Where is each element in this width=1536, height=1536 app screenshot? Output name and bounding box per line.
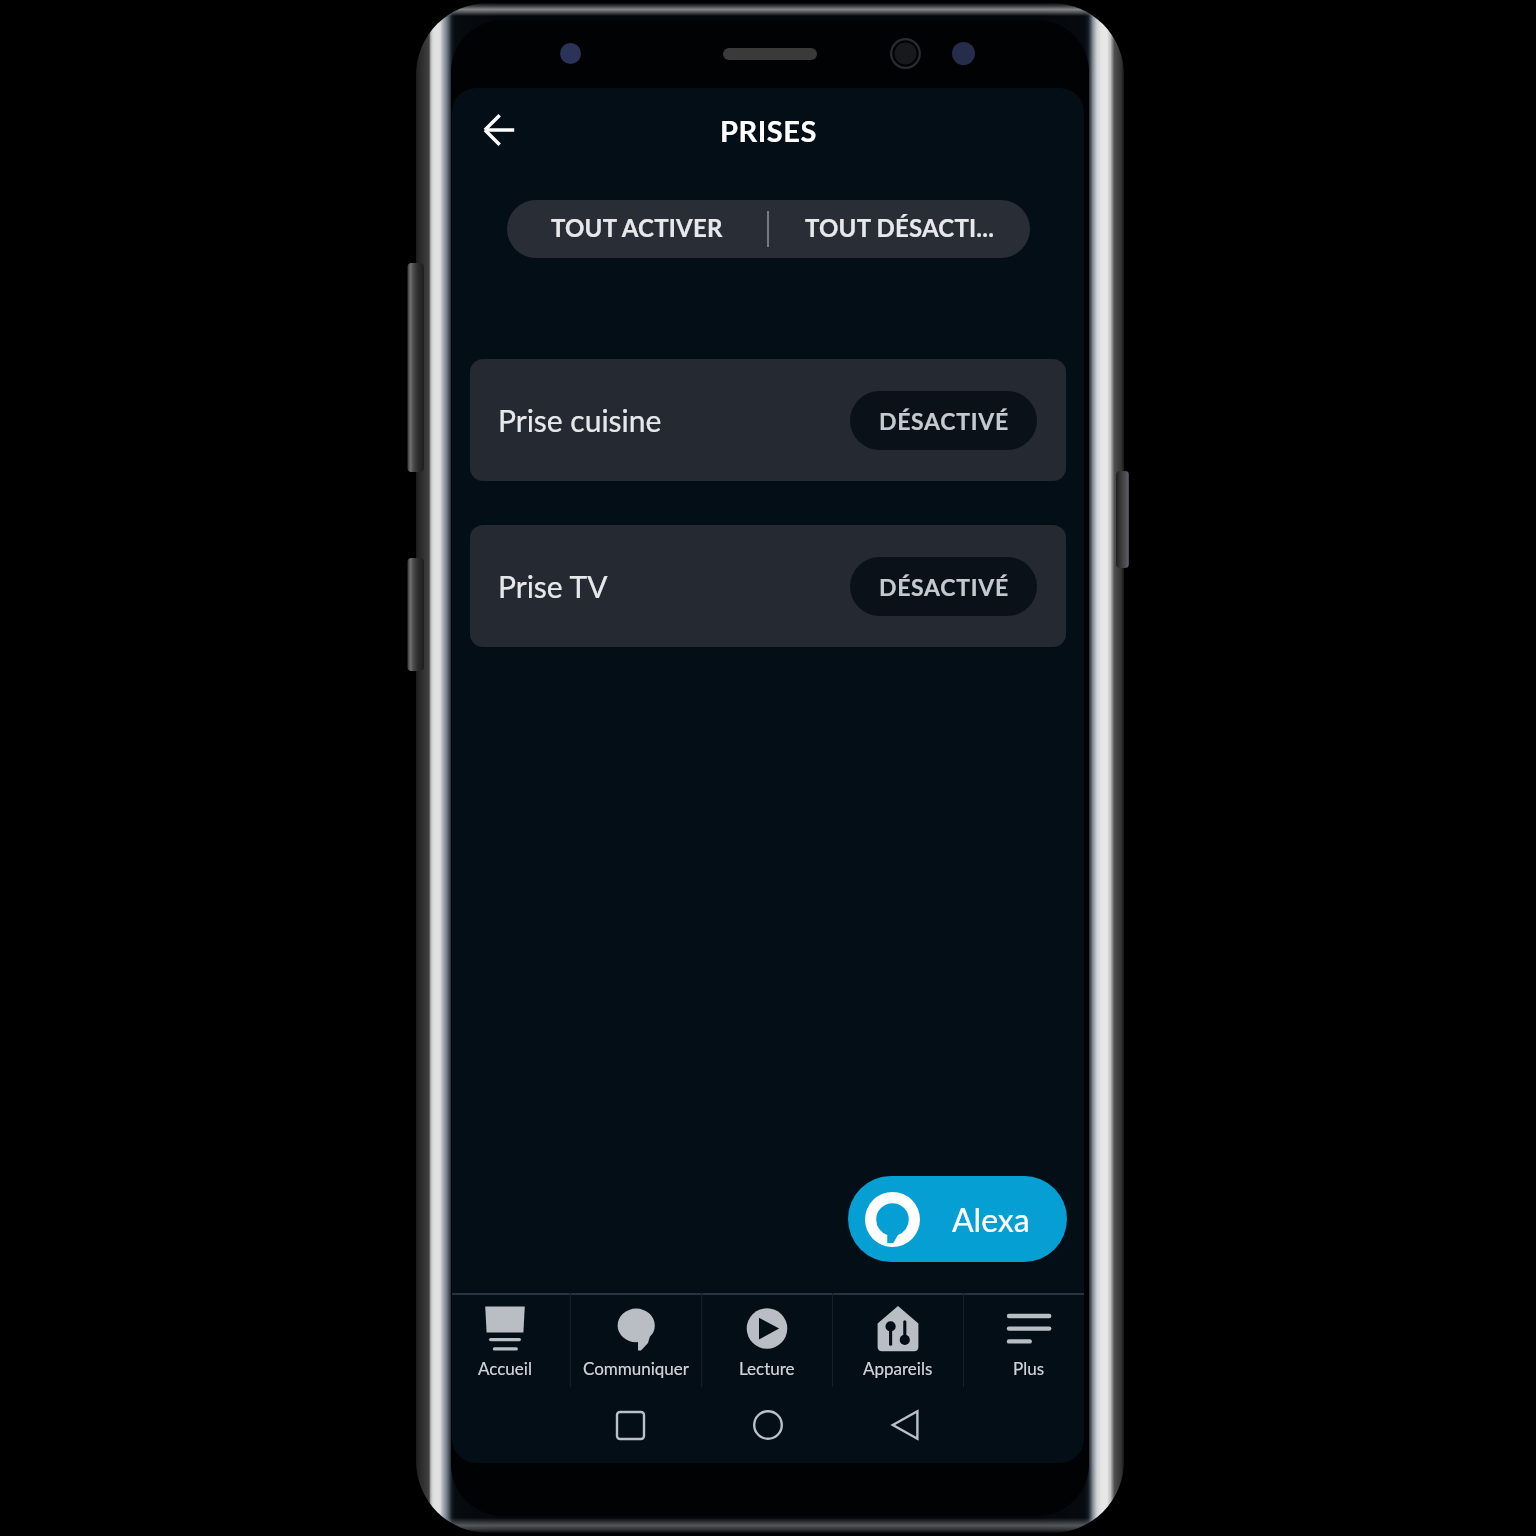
button[interactable]: Lecture	[702, 1293, 832, 1387]
button[interactable]: Accueil	[452, 1293, 570, 1387]
staticText: Accueil	[478, 1358, 532, 1378]
button[interactable]: Alexa	[848, 1176, 1067, 1262]
staticText: TOUT ACTIVER	[551, 213, 723, 242]
staticText: TOUT DÉSACTI...	[805, 213, 995, 242]
button[interactable]: TOUT ACTIVER	[507, 200, 767, 258]
button[interactable]: TOUT DÉSACTI...	[769, 200, 1030, 258]
button[interactable]: Aperçu	[604, 1399, 656, 1451]
button[interactable]: DÉSACTIVÉ	[850, 557, 1037, 616]
button[interactable]: Prise cuisine	[470, 359, 1066, 481]
button[interactable]: Appareils	[833, 1293, 963, 1387]
staticText: Communiquer	[583, 1358, 689, 1378]
staticText: Appareils	[863, 1358, 933, 1378]
button[interactable]: Retour	[880, 1399, 932, 1451]
button[interactable]: Prise TV	[470, 525, 1066, 647]
button[interactable]: Communiquer	[571, 1293, 701, 1387]
staticText: PRISES	[720, 113, 817, 148]
staticText: DÉSACTIVÉ	[879, 407, 1009, 435]
button[interactable]: DÉSACTIVÉ	[850, 391, 1037, 450]
button[interactable]: Plus	[964, 1293, 1084, 1387]
staticText: Plus	[1013, 1358, 1045, 1378]
staticText: Prise cuisine	[498, 402, 662, 438]
staticText: Prise TV	[498, 568, 608, 604]
button[interactable]: Retour	[467, 98, 531, 162]
staticText: Alexa	[952, 1200, 1030, 1238]
button[interactable]: Accueil	[742, 1399, 794, 1451]
staticText: DÉSACTIVÉ	[879, 573, 1009, 601]
staticText: Lecture	[739, 1358, 795, 1378]
